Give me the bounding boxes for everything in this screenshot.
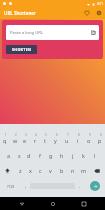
button[interactable]: z: [15, 163, 25, 178]
staticText: s: [18, 152, 21, 159]
staticText: 8: [78, 133, 80, 137]
button[interactable]: Paste a long URL: [6, 25, 99, 40]
staticText: t: [44, 137, 46, 144]
staticText: g: [49, 152, 53, 159]
staticText: 5: [45, 133, 47, 137]
staticText: m: [81, 167, 87, 174]
button[interactable]: b: [56, 163, 67, 178]
staticText: 9: [89, 133, 91, 137]
button[interactable]: 6: [50, 133, 61, 148]
button[interactable]: 9: [83, 133, 94, 148]
button[interactable]: 2: [10, 133, 20, 148]
staticText: i: [77, 137, 79, 144]
staticText: 0: [100, 133, 102, 137]
button[interactable]: 7: [61, 133, 72, 148]
staticText: Paste a long URL: [10, 30, 44, 36]
staticText: w: [13, 137, 18, 144]
button[interactable]: g: [45, 148, 56, 163]
staticText: z: [19, 167, 22, 174]
staticText: ,: [25, 183, 27, 189]
button[interactable]: m: [78, 163, 89, 178]
staticText: ?123: [7, 184, 15, 189]
button[interactable]: .: [75, 178, 84, 194]
button[interactable]: Favorites: [81, 7, 93, 19]
button[interactable]: d: [24, 148, 34, 163]
button[interactable]: l: [89, 148, 100, 163]
staticText: q: [3, 137, 7, 144]
staticText: 7: [67, 133, 69, 137]
button[interactable]: x: [25, 163, 35, 178]
button[interactable]: 8: [72, 133, 83, 148]
staticText: 6: [56, 133, 58, 137]
button[interactable]: n: [67, 163, 78, 178]
staticText: c: [39, 167, 42, 174]
staticText: r: [34, 137, 37, 144]
button[interactable]: Paste from clipboard: [90, 29, 97, 36]
staticText: URL Shortener: [4, 10, 36, 16]
button[interactable]: j: [67, 148, 78, 163]
staticText: e: [23, 137, 27, 144]
button[interactable]: SHORTEN: [6, 45, 37, 54]
staticText: 2: [15, 133, 17, 137]
staticText: k: [82, 152, 85, 159]
button[interactable]: f: [34, 148, 45, 163]
button[interactable]: Home: [47, 198, 58, 209]
button[interactable]: 0: [94, 133, 105, 148]
staticText: f: [39, 152, 41, 159]
button[interactable]: k: [78, 148, 89, 163]
staticText: a: [7, 152, 11, 159]
staticText: l: [94, 152, 96, 159]
button[interactable]: Enter: [84, 178, 105, 194]
button[interactable]: Backspace: [89, 163, 105, 178]
button[interactable]: s: [14, 148, 24, 163]
staticText: o: [87, 137, 91, 144]
button[interactable]: v: [45, 163, 56, 178]
button[interactable]: Recents: [78, 198, 89, 209]
button[interactable]: Back: [16, 198, 27, 209]
button[interactable]: 1: [0, 133, 10, 148]
button[interactable]: h: [56, 148, 67, 163]
staticText: u: [65, 137, 69, 144]
staticText: x: [29, 167, 32, 174]
button[interactable]: a: [4, 148, 14, 163]
staticText: 4: [35, 133, 37, 137]
staticText: 4:11: [97, 2, 103, 6]
staticText: v: [49, 167, 52, 174]
staticText: n: [71, 167, 75, 174]
button[interactable]: 5: [40, 133, 50, 148]
staticText: h: [60, 152, 64, 159]
button[interactable]: Shift: [0, 163, 15, 178]
staticText: j: [72, 152, 74, 159]
button[interactable]: ?123: [0, 178, 21, 194]
staticText: y: [54, 137, 57, 144]
button[interactable]: c: [35, 163, 45, 178]
staticText: b: [60, 167, 64, 174]
button[interactable]: Settings: [93, 7, 105, 19]
button[interactable]: ,: [21, 178, 30, 194]
button[interactable]: 3: [20, 133, 30, 148]
button[interactable]: 4: [30, 133, 40, 148]
staticText: d: [27, 152, 31, 159]
staticText: .: [79, 183, 81, 189]
staticText: 1: [5, 133, 7, 137]
staticText: p: [98, 137, 102, 144]
staticText: 3: [25, 133, 27, 137]
staticText: SHORTEN: [12, 47, 32, 52]
